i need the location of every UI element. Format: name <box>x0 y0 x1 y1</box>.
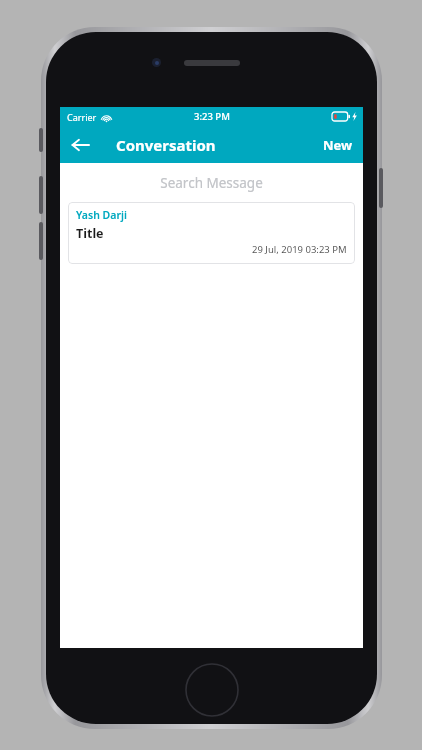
button[interactable]: Yash Darji <box>68 202 355 264</box>
staticText: Title <box>76 225 104 242</box>
button[interactable]: New <box>313 126 363 163</box>
staticText: Search Message <box>160 174 263 192</box>
staticText: Carrier <box>67 111 97 123</box>
staticText: New <box>323 136 353 154</box>
staticText: 3:23 PM <box>194 110 230 123</box>
staticText: Yash Darji <box>76 208 127 222</box>
staticText: Conversation <box>116 135 216 155</box>
staticText: 29 Jul, 2019 03:23 PM <box>252 243 347 256</box>
button[interactable]: Search Message <box>60 163 363 202</box>
button[interactable]: Back <box>60 126 100 163</box>
